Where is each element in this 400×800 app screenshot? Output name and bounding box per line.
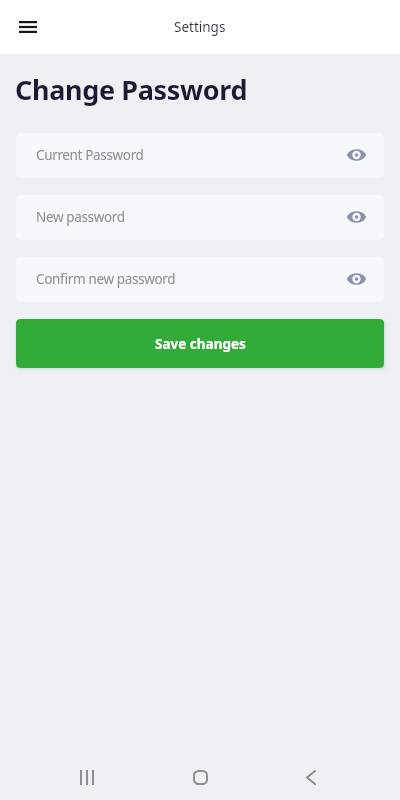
staticText: Save changes (155, 335, 246, 353)
button[interactable]: Show password (342, 265, 370, 293)
button[interactable]: Home (176, 754, 224, 800)
button[interactable]: Show password (342, 203, 370, 231)
button[interactable]: Show password (342, 141, 370, 169)
button[interactable]: Save changes (16, 319, 384, 368)
button[interactable]: Confirm new password (16, 257, 384, 302)
staticText: Confirm new password (36, 270, 176, 288)
button[interactable]: New password (16, 195, 384, 240)
staticText: Change Password (15, 71, 248, 108)
staticText: New password (36, 208, 125, 226)
button[interactable]: Recents (63, 754, 111, 800)
button[interactable]: Back (287, 754, 335, 800)
staticText: Settings (174, 18, 226, 36)
staticText: Current Password (36, 146, 144, 164)
button[interactable]: Current Password (16, 133, 384, 178)
button[interactable]: Menu (8, 7, 48, 47)
